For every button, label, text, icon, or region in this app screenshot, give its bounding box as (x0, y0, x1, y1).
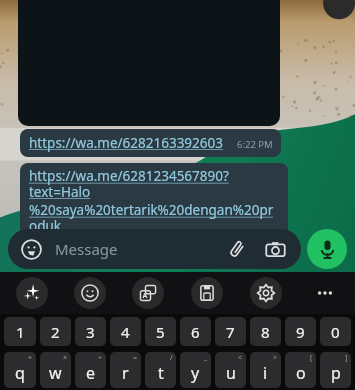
staticText: 4 (121, 322, 130, 342)
staticText: r (122, 362, 129, 384)
staticText: Message (55, 239, 118, 259)
staticText: ÷ (98, 353, 103, 363)
staticText: https://wa.me/6281234567890?text=Halo (29, 167, 280, 201)
staticText: = (133, 353, 138, 363)
staticText: https://wa.me/6282163392603 (29, 134, 223, 152)
button[interactable]: More options (309, 277, 341, 309)
button[interactable]: 7 (215, 317, 246, 346)
button[interactable]: Emoji (74, 277, 106, 309)
staticText: + (28, 353, 33, 363)
staticText: u (226, 362, 236, 384)
staticText: 2 (51, 322, 60, 342)
staticText: > (273, 353, 278, 363)
button[interactable]: Translate (132, 277, 164, 309)
button[interactable]: 4 (110, 317, 141, 346)
staticText: i (263, 362, 268, 384)
staticText: < (238, 353, 243, 363)
button[interactable]: × (40, 352, 71, 388)
button[interactable]: Attach (223, 235, 251, 263)
staticText: q (15, 362, 25, 384)
staticText: × (63, 353, 68, 363)
button[interactable]: ÷ (75, 352, 106, 388)
staticText: 8 (261, 322, 270, 342)
staticText: 6:24 PM (244, 253, 280, 266)
staticText: e (86, 362, 96, 384)
button[interactable]: [ (285, 352, 316, 388)
button[interactable]: Clipboard (191, 277, 223, 309)
staticText: 6:22 PM (237, 138, 273, 151)
staticText: 9 (296, 322, 305, 342)
staticText: 5 (156, 322, 165, 342)
staticText: %20Anda (29, 235, 89, 253)
button[interactable] (18, 0, 280, 126)
staticText: y (191, 362, 200, 384)
staticText: w (49, 362, 62, 384)
button[interactable]: 2 (40, 317, 71, 346)
button[interactable]: Emoji and stickers (8, 229, 301, 269)
button[interactable]: AI assist (16, 277, 48, 309)
staticText: 0 (331, 322, 340, 342)
staticText: 3 (86, 322, 95, 342)
staticText: 1 (16, 322, 25, 342)
staticText: / (170, 353, 173, 363)
button[interactable]: + (4, 352, 36, 388)
button[interactable]: https://wa.me/6282163392603 (20, 129, 281, 157)
button[interactable]: Emoji and stickers (18, 236, 44, 262)
button[interactable]: 1 (4, 317, 36, 346)
button[interactable]: _ (180, 352, 211, 388)
button[interactable]: 3 (75, 317, 106, 346)
button[interactable]: https://wa.me/6281234567890?text=Halo (20, 163, 288, 269)
button[interactable]: 5 (145, 317, 176, 346)
staticText: p (331, 362, 341, 384)
button[interactable]: 0 (320, 317, 351, 346)
staticText: _ (204, 353, 208, 363)
staticText: 6 (191, 322, 200, 342)
staticText: %20saya%20tertarik%20dengan%20produk (29, 201, 280, 235)
button[interactable]: > (250, 352, 281, 388)
button[interactable]: 8 (250, 317, 281, 346)
button[interactable]: Voice message (307, 229, 347, 269)
staticText: o (296, 362, 306, 384)
button[interactable]: Camera (261, 235, 289, 263)
staticText: ] (345, 353, 348, 363)
button[interactable]: Settings (250, 277, 282, 309)
button[interactable]: 9 (285, 317, 316, 346)
staticText: t (158, 362, 164, 384)
button[interactable]: ] (320, 352, 351, 388)
button[interactable]: = (110, 352, 141, 388)
staticText: 7 (226, 322, 235, 342)
button[interactable]: / (145, 352, 176, 388)
button[interactable]: < (215, 352, 246, 388)
button[interactable]: 6 (180, 317, 211, 346)
staticText: [ (310, 353, 313, 363)
